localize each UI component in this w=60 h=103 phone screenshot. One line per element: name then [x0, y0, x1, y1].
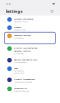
staticText: Digital Wellbeing and parental controls: [14, 46, 37, 52]
staticText: Language, Date and time: [14, 81, 32, 83]
staticText: ▮▮: [52, 2, 54, 5]
staticText: Storage, Memory: [14, 61, 27, 64]
staticText: Google settings: [14, 29, 26, 31]
staticText: Manage accounts: [14, 21, 28, 23]
staticText: General management: [14, 78, 35, 81]
staticText: Accounts and backup: [14, 17, 33, 20]
staticText: Screen time: [14, 53, 23, 55]
button[interactable]: Accounts and backup: [0, 17, 60, 23]
staticText: Labs, Side key: [14, 37, 24, 39]
button[interactable]: Battery and device care: [0, 58, 60, 63]
button[interactable]: Advanced features: [0, 34, 60, 39]
staticText: Battery and device care: [14, 58, 37, 61]
button[interactable]: Apps: [0, 66, 60, 74]
staticText: Default apps, App settings: [14, 70, 24, 74]
staticText: 12:45: [5, 2, 10, 5]
button[interactable]: Digital Wellbeing and parental controls: [0, 46, 60, 55]
button[interactable]: Google: [0, 25, 60, 31]
button[interactable]: Search settings: [49, 9, 54, 14]
staticText: Accessibility: [14, 87, 27, 90]
staticText: Advanced features: [14, 34, 31, 37]
button[interactable]: Accessibility: [0, 87, 60, 92]
staticText: Google: [14, 26, 21, 28]
staticText: Settings: [5, 8, 22, 14]
staticText: Apps: [14, 67, 18, 69]
staticText: TalkBack, Mono audio: [14, 90, 29, 92]
button[interactable]: General management: [0, 77, 60, 83]
